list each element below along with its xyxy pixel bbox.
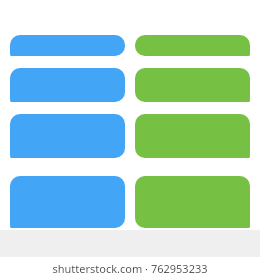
button[interactable]: Received message 2 [10,68,125,102]
button[interactable]: Received message 4 [10,176,125,228]
button[interactable]: Sent message 3 [135,114,250,158]
staticText: shutterstock.com · 762953233 [0,261,260,280]
button[interactable]: Received message 3 [10,114,125,158]
button[interactable]: Sent message 4 [135,176,250,228]
button[interactable]: Received message 1 [10,35,125,56]
button[interactable]: Sent message 1 [135,35,250,56]
button[interactable]: Sent message 2 [135,68,250,102]
